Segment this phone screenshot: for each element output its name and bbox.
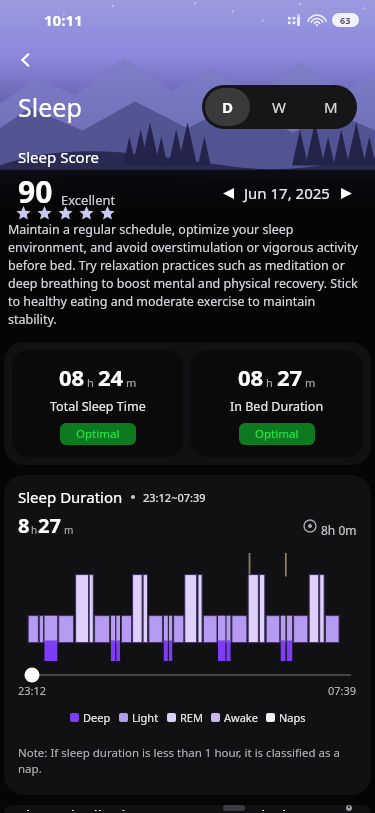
staticText: W (272, 97, 286, 117)
button[interactable]: 08 (12, 350, 183, 457)
button[interactable]: M (308, 88, 354, 126)
staticText: Total Sleep Time (50, 398, 146, 415)
staticText: 08 (59, 362, 85, 392)
staticText: Light (132, 710, 159, 725)
staticText: Deep (83, 710, 111, 725)
staticText: 8h 0m (321, 522, 357, 538)
staticText: m (305, 375, 316, 390)
staticText: Maintain a regular schedule, optimize yo… (8, 221, 367, 328)
staticText: 23:12 (18, 683, 47, 698)
staticText: m (64, 523, 74, 537)
button[interactable]: Back (6, 40, 46, 80)
button[interactable]: D (205, 88, 250, 126)
button[interactable]: W (256, 88, 302, 126)
staticText: 8 (18, 512, 30, 539)
button[interactable]: 08 (191, 350, 363, 457)
staticText: In Bed Duration (230, 398, 324, 415)
staticText: Jun 17, 2025 (244, 183, 330, 203)
staticText: Sleep Duration (18, 487, 123, 507)
staticText: 08 (238, 362, 264, 392)
staticText: REM (180, 710, 203, 725)
staticText: 90 (18, 171, 53, 212)
button[interactable]: Next day (335, 182, 357, 204)
staticText: Sleep (18, 90, 82, 124)
staticText: 10:11 (44, 10, 83, 30)
staticText: Naps (279, 710, 306, 725)
staticText: D (222, 97, 233, 117)
staticText: Optimal (255, 426, 299, 442)
staticText: Ideal Range (251, 805, 335, 811)
staticText: 24 (98, 362, 124, 392)
staticText: Note: If sleep duration is less than 1 h… (18, 745, 357, 777)
button[interactable]: Previous day (217, 182, 239, 204)
staticText: m (126, 375, 137, 390)
staticText: 63 (340, 14, 351, 26)
staticText: Optimal (76, 426, 120, 442)
staticText: Excellent (61, 191, 116, 209)
staticText: Sleep Score (18, 147, 100, 167)
staticText: 27 (277, 362, 303, 392)
staticText: Sleep Distribution (18, 805, 144, 811)
staticText: 23:12~07:39 (143, 490, 206, 505)
staticText: h (87, 375, 94, 390)
staticText: M (324, 97, 338, 117)
staticText: Awake (224, 710, 258, 725)
staticText: 27 (38, 512, 61, 539)
staticText: 07:39 (328, 683, 357, 698)
staticText: h (266, 375, 273, 390)
staticText: h (31, 523, 38, 537)
